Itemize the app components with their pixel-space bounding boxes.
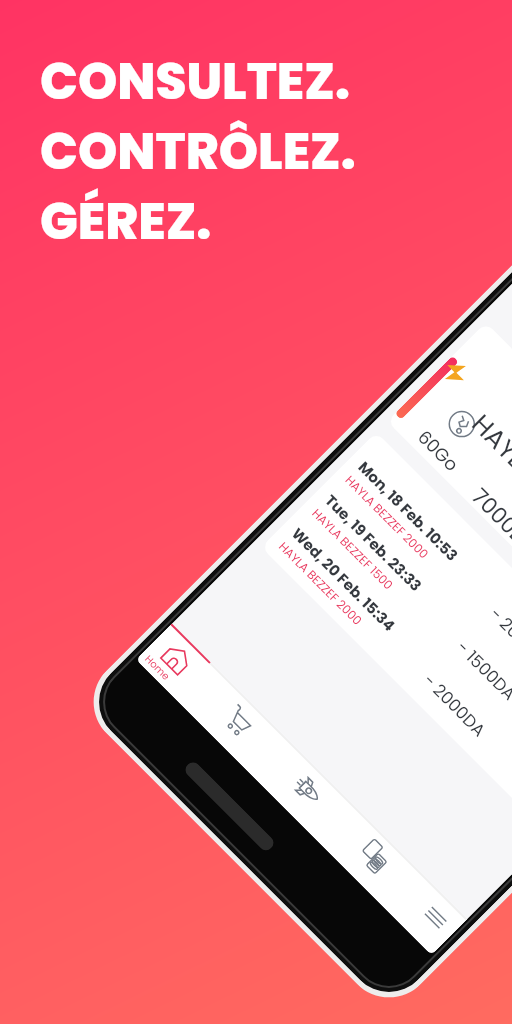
- button[interactable]: Boost: [268, 756, 342, 830]
- staticText: HAYLA BEZZEF 1500: [308, 505, 397, 594]
- staticText: - 1500DA: [451, 635, 512, 705]
- staticText: CONTRÔLEZ.: [40, 117, 356, 187]
- staticText: HAYLA: [464, 406, 512, 488]
- button[interactable]: Tue, 19 Feb. 23:33: [293, 481, 512, 797]
- staticText: CONSULTEZ.: [40, 47, 350, 117]
- button[interactable]: Wed, 20 Feb. 15:34: [261, 515, 512, 830]
- staticText: - 2000DA: [418, 669, 491, 742]
- staticText: HAYLA BEZZEF 2000: [342, 471, 433, 563]
- staticText: Tue, 19 Feb. 23:33: [320, 490, 426, 596]
- staticText: 60Go: [412, 425, 465, 477]
- button[interactable]: Mon, 18 Feb. 10:53: [327, 448, 512, 764]
- staticText: GÉREZ.: [40, 187, 212, 257]
- staticText: HAYLA BEZZEF 2000: [275, 538, 366, 629]
- staticText: Wed, 20 Feb. 15:34: [287, 523, 400, 636]
- button[interactable]: 60Go: [387, 322, 512, 704]
- staticText: - 2000DA: [484, 602, 512, 676]
- button[interactable]: Transfer: [334, 822, 409, 896]
- staticText: Home: [142, 652, 173, 683]
- button[interactable]: Shop: [198, 686, 272, 760]
- button[interactable]: Home: [136, 624, 211, 698]
- staticText: 7000DA: [467, 481, 512, 561]
- staticText: Mon, 18 Feb. 10:53: [354, 457, 463, 566]
- button[interactable]: More: [395, 883, 467, 955]
